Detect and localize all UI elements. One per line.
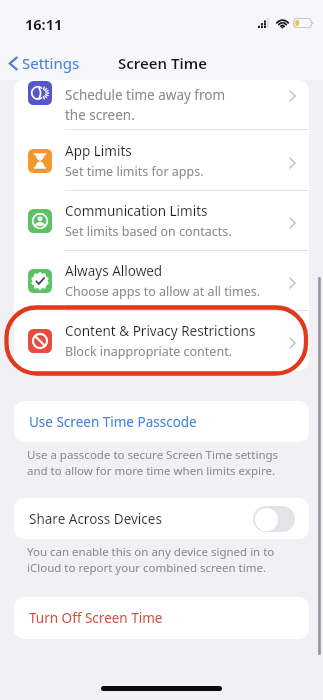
staticText: You can enable this on any device signed… [27, 544, 296, 575]
button[interactable]: Settings [0, 48, 88, 78]
button[interactable]: App Limits [14, 130, 309, 191]
other: Content & Privacy Restrictions [28, 329, 52, 353]
staticText: Content & Privacy Restrictions [65, 322, 256, 340]
button[interactable]: Always Allowed [14, 251, 309, 311]
other: Always Allowed [28, 269, 52, 293]
button[interactable]: Content & Privacy Restrictions [14, 311, 309, 371]
other: App Limits [28, 149, 52, 173]
button[interactable]: Turn Off Screen Time [14, 597, 309, 639]
button[interactable]: Share Across Devices toggle [253, 506, 295, 532]
staticText: Share Across Devices [29, 510, 162, 528]
staticText: Choose apps to allow at all times. [65, 283, 261, 300]
staticText: Screen Time [118, 53, 207, 73]
staticText: Always Allowed [65, 262, 163, 280]
staticText: Communication Limits [65, 202, 208, 220]
button[interactable]: Communication Limits [14, 191, 309, 251]
other: Communication Limits [28, 209, 52, 233]
staticText: Use a passcode to secure Screen Time set… [27, 447, 296, 478]
button[interactable]: Downtime [14, 80, 309, 130]
staticText: Block inappropriate content. [65, 343, 232, 360]
staticText: Turn Off Screen Time [29, 609, 163, 627]
staticText: Set limits based on contacts. [65, 223, 232, 240]
staticText: Schedule time away from the screen. [65, 86, 226, 124]
staticText: 16:11 [25, 14, 63, 34]
staticText: Settings [22, 53, 80, 73]
other: Downtime [28, 81, 52, 105]
staticText: Set time limits for apps. [65, 163, 204, 180]
button[interactable]: Use Screen Time Passcode [14, 401, 309, 442]
staticText: Use Screen Time Passcode [29, 413, 197, 431]
staticText: App Limits [65, 142, 132, 160]
